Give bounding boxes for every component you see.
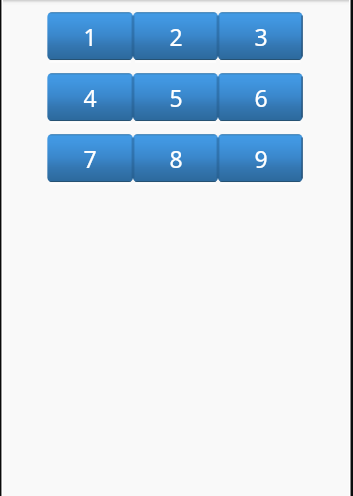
staticText: 9 [254,143,268,174]
button[interactable]: 3 [218,12,303,60]
staticText: 5 [169,82,183,113]
staticText: 1 [83,21,97,52]
staticText: 2 [169,21,183,52]
staticText: 7 [83,143,97,174]
staticText: 6 [254,82,268,113]
button[interactable]: 4 [47,73,133,121]
button[interactable]: 6 [218,73,303,121]
button[interactable]: 1 [47,12,133,60]
button[interactable]: 2 [133,12,218,60]
staticText: 8 [169,143,183,174]
button[interactable]: 8 [133,134,218,182]
staticText: 4 [83,82,97,113]
button[interactable]: 5 [133,73,218,121]
button[interactable]: 9 [218,134,303,182]
button[interactable]: 7 [47,134,133,182]
staticText: 3 [254,21,268,52]
